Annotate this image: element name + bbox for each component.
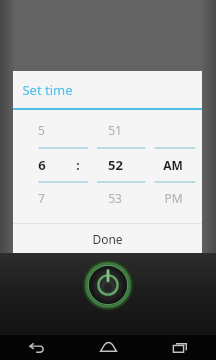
staticText: AM [163, 157, 183, 173]
button[interactable]: Done [13, 224, 202, 253]
staticText: 6 [38, 156, 46, 174]
staticText: 51 [108, 122, 122, 138]
staticText: : [76, 157, 80, 173]
button[interactable]: Home [72, 335, 144, 360]
staticText: Done [92, 231, 123, 247]
staticText: 53 [108, 190, 122, 206]
button[interactable]: 52 [86, 154, 144, 176]
button[interactable]: 6 [13, 154, 70, 176]
staticText: PM [164, 190, 183, 206]
button[interactable]: Recent apps [144, 335, 216, 360]
staticText: 7 [38, 190, 45, 206]
button[interactable]: Back [0, 335, 72, 360]
staticText: Set time [22, 81, 73, 99]
staticText: 52 [108, 156, 123, 174]
staticText: 5 [38, 122, 45, 138]
button[interactable]: AM [144, 154, 202, 176]
